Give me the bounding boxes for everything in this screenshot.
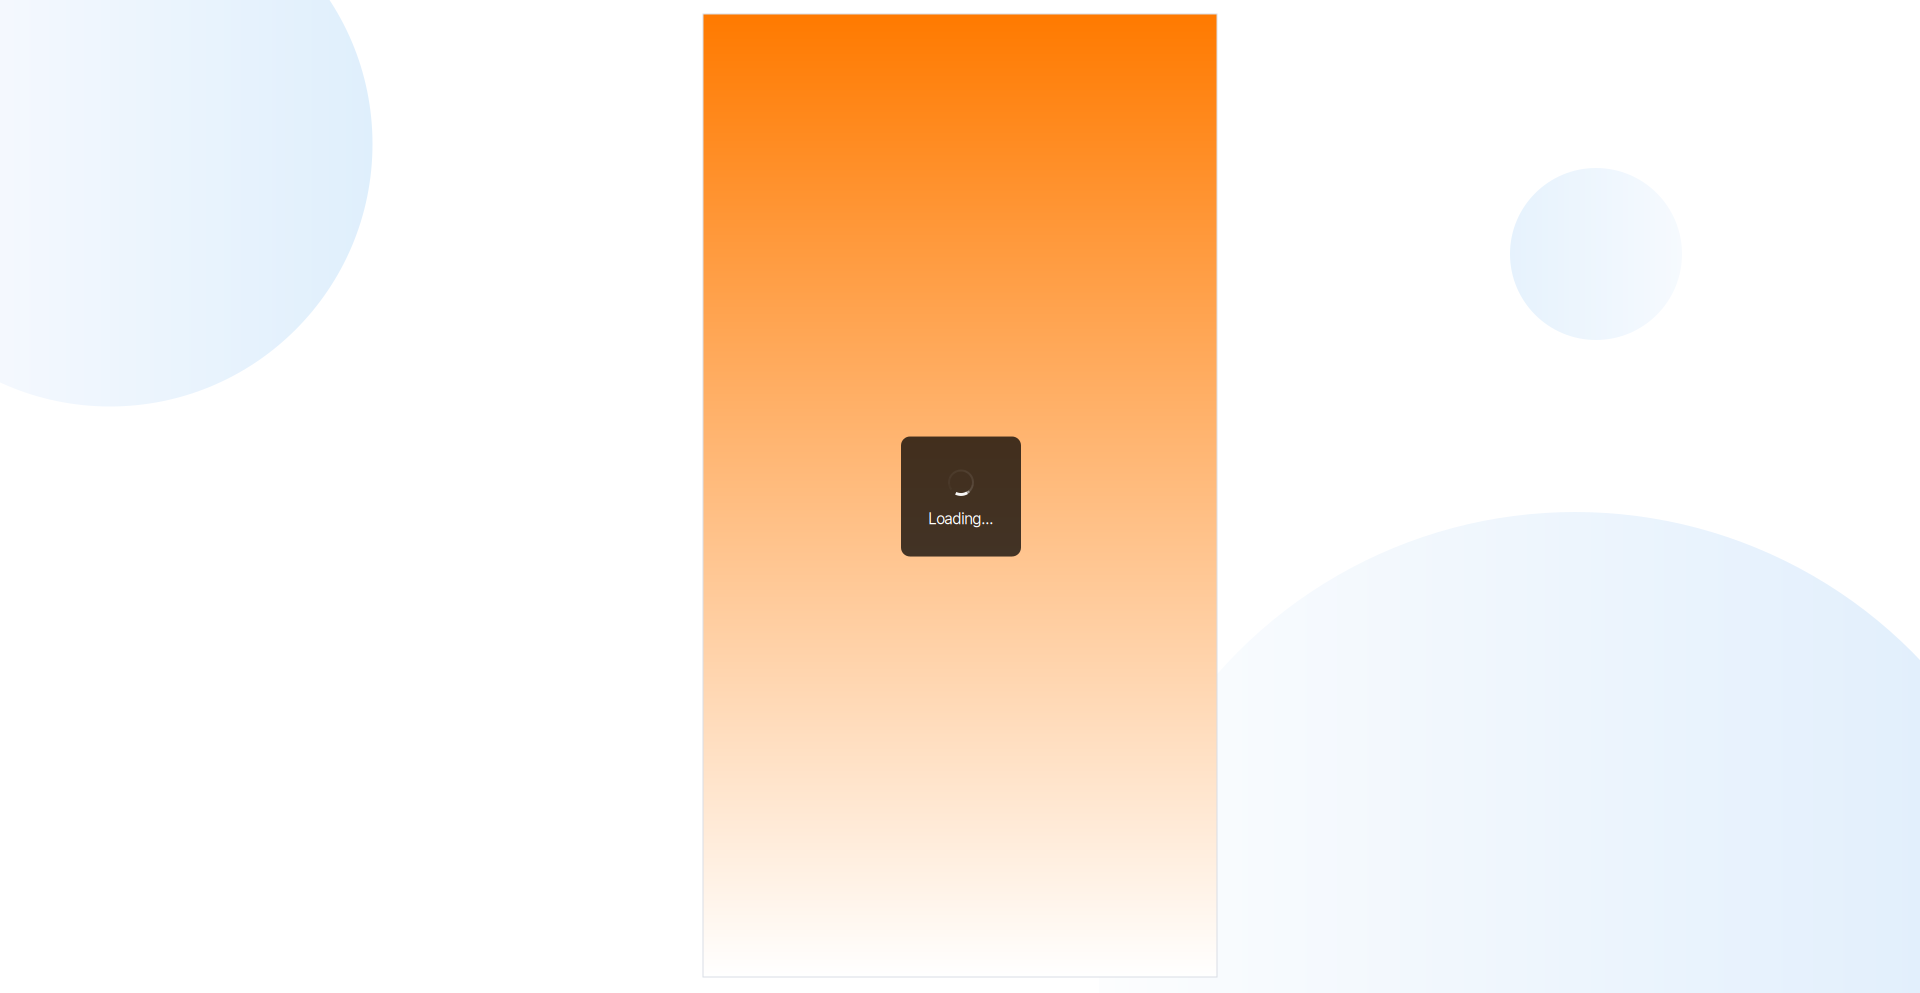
staticText: Loading...	[928, 509, 993, 528]
button[interactable]: Loading	[901, 436, 1021, 556]
